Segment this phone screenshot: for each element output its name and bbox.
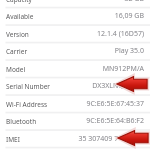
staticText: Model bbox=[6, 65, 26, 74]
button[interactable]: Capacity bbox=[0, 0, 150, 8]
staticText: Available bbox=[6, 12, 34, 21]
staticText: Wi-Fi Address bbox=[6, 100, 48, 109]
staticText: Carrier bbox=[6, 47, 28, 56]
staticText: 32 GB bbox=[124, 0, 144, 4]
staticText: 16,09 GB bbox=[114, 11, 144, 21]
staticText: Bluetooth bbox=[6, 117, 37, 126]
button[interactable]: Wi-Fi Address bbox=[0, 95, 150, 113]
staticText: 35 307409 712345 6 bbox=[78, 134, 144, 144]
staticText: Capacity bbox=[6, 0, 32, 4]
staticText: MN912PM/A bbox=[102, 64, 144, 74]
button[interactable]: Version bbox=[0, 25, 150, 43]
staticText: 12.1.4 (16D57) bbox=[97, 29, 144, 39]
staticText: IMEI bbox=[6, 135, 20, 144]
button[interactable]: Carrier bbox=[0, 42, 150, 60]
button[interactable]: Bluetooth bbox=[0, 112, 150, 130]
button[interactable]: IMEI callout bbox=[117, 129, 149, 147]
staticText: 9C:E6:5E:64:B6:F2 bbox=[86, 116, 144, 126]
staticText: Version bbox=[6, 30, 29, 39]
button[interactable]: Available bbox=[0, 7, 150, 25]
staticText: Play 35.0 bbox=[114, 46, 144, 56]
button[interactable]: IMEI bbox=[0, 130, 150, 148]
button[interactable]: Serial number callout bbox=[116, 75, 148, 93]
staticText: Serial Number bbox=[6, 82, 50, 91]
button[interactable]: Serial Number bbox=[0, 77, 150, 95]
staticText: DX3XLNQ1HG7J bbox=[92, 81, 144, 91]
button[interactable]: Model bbox=[0, 60, 150, 78]
staticText: 9C:E6:5E:67:45:37 bbox=[86, 99, 144, 109]
